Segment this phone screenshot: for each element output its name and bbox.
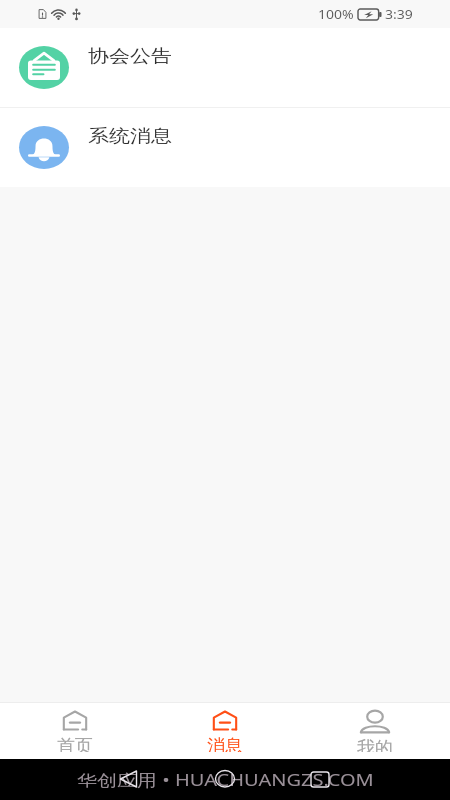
staticText: 协会公告 — [88, 45, 172, 67]
staticText: 100% — [318, 6, 354, 23]
staticText: 首页 — [57, 735, 93, 752]
button[interactable]: 消息 — [150, 703, 300, 759]
button[interactable]: 首页 — [0, 703, 150, 759]
staticText: 3:39 — [385, 6, 413, 23]
staticText: 华创应用 • HUACHUANGZS.COM — [77, 769, 374, 790]
button[interactable]: 系统消息 — [0, 108, 450, 187]
staticText: 消息 — [207, 735, 243, 752]
staticText: 我的 — [357, 737, 393, 752]
staticText: 系统消息 — [88, 125, 172, 147]
button[interactable]: 我的 — [300, 703, 450, 759]
button[interactable]: 协会公告 — [0, 28, 450, 107]
